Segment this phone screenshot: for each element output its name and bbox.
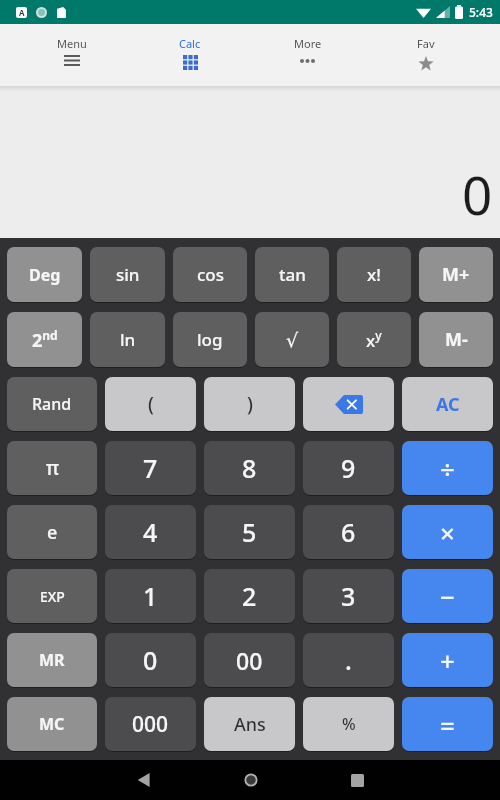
staticText: x! bbox=[367, 263, 381, 286]
staticText: ÷ bbox=[440, 451, 455, 486]
staticText: Ans bbox=[234, 712, 266, 737]
staticText: 00 bbox=[236, 645, 263, 676]
staticText: xy bbox=[366, 327, 382, 352]
staticText: sin bbox=[116, 263, 140, 286]
staticText: % bbox=[342, 713, 356, 735]
button[interactable]: Fav bbox=[367, 24, 485, 86]
button[interactable]: MC bbox=[7, 697, 97, 751]
staticText: log bbox=[197, 328, 223, 351]
button[interactable] bbox=[244, 773, 258, 787]
button[interactable]: Menu bbox=[13, 24, 131, 86]
staticText: Deg bbox=[29, 264, 61, 286]
staticText: − bbox=[440, 579, 455, 614]
staticText: e bbox=[47, 520, 58, 545]
button[interactable]: 000 bbox=[105, 697, 196, 751]
staticText: 8 bbox=[242, 451, 257, 485]
button[interactable]: × bbox=[402, 505, 493, 559]
button[interactable]: 3 bbox=[303, 569, 394, 623]
staticText: MC bbox=[39, 713, 65, 735]
button[interactable]: 0 bbox=[105, 633, 196, 687]
button[interactable]: = bbox=[402, 697, 493, 751]
button[interactable]: 6 bbox=[303, 505, 394, 559]
button[interactable]: 8 bbox=[204, 441, 295, 495]
staticText: Menu bbox=[57, 36, 87, 51]
staticText: Calc bbox=[179, 36, 201, 51]
button[interactable]: M- bbox=[419, 312, 493, 367]
staticText: 9 bbox=[341, 451, 356, 485]
button[interactable]: cos bbox=[173, 247, 247, 302]
button[interactable]: 5 bbox=[204, 505, 295, 559]
staticText: 2 bbox=[242, 579, 257, 613]
staticText: + bbox=[440, 643, 455, 678]
staticText: MR bbox=[39, 649, 65, 671]
staticText: 000 bbox=[132, 710, 169, 739]
button[interactable]: More bbox=[249, 24, 367, 86]
button[interactable]: + bbox=[402, 633, 493, 687]
staticText: EXP bbox=[40, 587, 65, 606]
button[interactable]: % bbox=[303, 697, 394, 751]
staticText: tan bbox=[279, 263, 306, 286]
staticText: 2nd bbox=[32, 327, 58, 352]
staticText: π bbox=[46, 455, 59, 481]
button[interactable] bbox=[137, 773, 151, 787]
staticText: √ bbox=[286, 329, 299, 351]
button[interactable]: 7 bbox=[105, 441, 196, 495]
staticText: cos bbox=[197, 263, 224, 286]
button[interactable]: sin bbox=[90, 247, 165, 302]
button[interactable]: x! bbox=[337, 247, 411, 302]
staticText: 5 bbox=[242, 515, 257, 549]
staticText: = bbox=[440, 707, 455, 742]
button[interactable]: 2nd bbox=[7, 312, 82, 367]
staticText: Rand bbox=[32, 393, 72, 415]
button[interactable]: MR bbox=[7, 633, 97, 687]
staticText: × bbox=[440, 515, 455, 550]
staticText: M+ bbox=[442, 262, 470, 287]
button[interactable]: ln bbox=[90, 312, 165, 367]
button[interactable]: 00 bbox=[204, 633, 295, 687]
button[interactable]: Rand bbox=[7, 377, 97, 431]
staticText: 6 bbox=[341, 515, 356, 549]
staticText: . bbox=[345, 643, 352, 677]
staticText: More bbox=[294, 36, 322, 51]
button[interactable]: Deg bbox=[7, 247, 82, 302]
button[interactable]: AC bbox=[402, 377, 493, 431]
button[interactable]: M+ bbox=[419, 247, 493, 302]
staticText: 5:43 bbox=[469, 4, 493, 20]
button[interactable]: e bbox=[7, 505, 97, 559]
staticText: 0 bbox=[462, 158, 493, 230]
staticText: A bbox=[19, 7, 25, 18]
button[interactable]: Calc bbox=[131, 24, 249, 86]
button[interactable]: π bbox=[7, 441, 97, 495]
button[interactable]: ) bbox=[204, 377, 295, 431]
button[interactable] bbox=[303, 377, 394, 431]
staticText: 1 bbox=[143, 579, 158, 613]
button[interactable]: 4 bbox=[105, 505, 196, 559]
staticText: Fav bbox=[417, 36, 435, 51]
staticText: 4 bbox=[143, 515, 158, 549]
staticText: ) bbox=[247, 391, 253, 417]
button[interactable]: . bbox=[303, 633, 394, 687]
staticText: 0 bbox=[143, 643, 158, 677]
button[interactable]: 1 bbox=[105, 569, 196, 623]
staticText: AC bbox=[436, 392, 460, 417]
staticText: 3 bbox=[341, 579, 356, 613]
button[interactable]: ( bbox=[105, 377, 196, 431]
button[interactable]: EXP bbox=[7, 569, 97, 623]
button[interactable]: 9 bbox=[303, 441, 394, 495]
staticText: ( bbox=[148, 391, 154, 417]
button[interactable]: log bbox=[173, 312, 247, 367]
button[interactable]: xy bbox=[337, 312, 411, 367]
staticText: ln bbox=[120, 328, 136, 351]
staticText: 7 bbox=[143, 451, 158, 485]
button[interactable]: ÷ bbox=[402, 441, 493, 495]
button[interactable] bbox=[351, 774, 364, 787]
button[interactable]: tan bbox=[255, 247, 329, 302]
button[interactable]: Ans bbox=[204, 697, 295, 751]
button[interactable]: − bbox=[402, 569, 493, 623]
button[interactable]: 2 bbox=[204, 569, 295, 623]
staticText: M- bbox=[445, 327, 468, 352]
button[interactable]: √ bbox=[255, 312, 329, 367]
